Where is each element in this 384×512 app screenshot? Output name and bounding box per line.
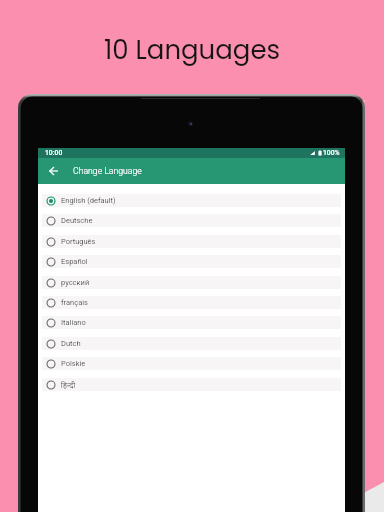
button[interactable]: Back bbox=[38, 158, 68, 184]
button[interactable]: Deutsche bbox=[42, 214, 341, 227]
staticText: Deutsche bbox=[61, 216, 93, 225]
staticText: Español bbox=[61, 257, 88, 266]
button[interactable]: Dutch bbox=[42, 337, 341, 350]
button[interactable]: Português bbox=[42, 235, 341, 248]
staticText: русский bbox=[61, 278, 90, 287]
staticText: Polskie bbox=[61, 359, 86, 368]
button[interactable]: Español bbox=[42, 255, 341, 268]
button[interactable]: русский bbox=[42, 276, 341, 289]
button[interactable]: Italiano bbox=[42, 316, 341, 329]
button[interactable]: हिन्दी bbox=[42, 378, 341, 391]
button[interactable]: English (default) bbox=[42, 194, 341, 207]
staticText: 10 Languages bbox=[104, 32, 281, 68]
staticText: Change Language bbox=[73, 166, 142, 176]
button[interactable]: français bbox=[42, 296, 341, 309]
staticText: 10:00 bbox=[45, 149, 63, 157]
button[interactable]: Polskie bbox=[42, 357, 341, 370]
staticText: हिन्दी bbox=[61, 380, 76, 390]
staticText: Português bbox=[61, 237, 96, 246]
staticText: English (default) bbox=[61, 196, 116, 205]
staticText: Dutch bbox=[61, 339, 81, 348]
staticText: Italiano bbox=[61, 318, 86, 327]
staticText: 100% bbox=[323, 149, 340, 157]
staticText: français bbox=[61, 298, 88, 307]
